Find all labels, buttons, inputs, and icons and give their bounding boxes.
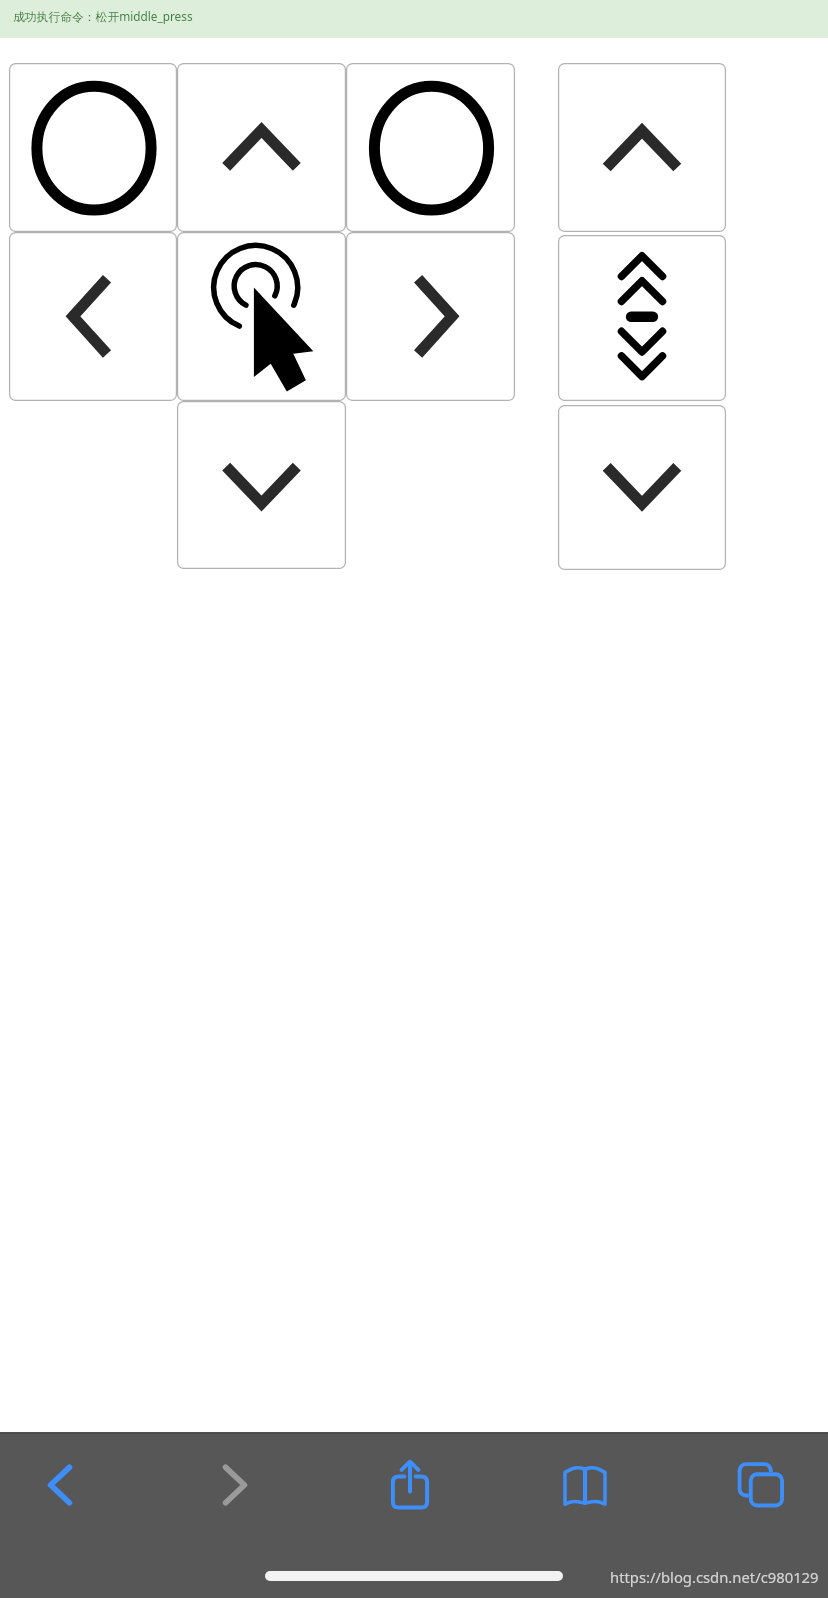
button[interactable]: Up: [558, 63, 726, 232]
button[interactable]: Down: [177, 401, 346, 569]
button[interactable]: Forward: [200, 1450, 270, 1520]
staticText: 成功执行命令：松开middle_press: [13, 8, 193, 24]
staticText: https://blog.csdn.net/c980129: [610, 1567, 819, 1587]
button[interactable]: Left: [9, 232, 177, 401]
button[interactable]: Bookmarks: [550, 1450, 620, 1520]
button[interactable]: Right: [346, 232, 515, 401]
button[interactable]: Circle: [9, 63, 177, 232]
button[interactable]: Scroll: [558, 235, 726, 401]
button[interactable]: Circle: [346, 63, 515, 232]
button[interactable]: Up: [177, 63, 346, 232]
button[interactable]: Down: [558, 405, 726, 570]
button[interactable]: Tap: [177, 232, 346, 401]
button[interactable]: Back: [25, 1450, 95, 1520]
button[interactable]: Tabs: [726, 1450, 796, 1520]
button[interactable]: Share: [375, 1450, 445, 1520]
